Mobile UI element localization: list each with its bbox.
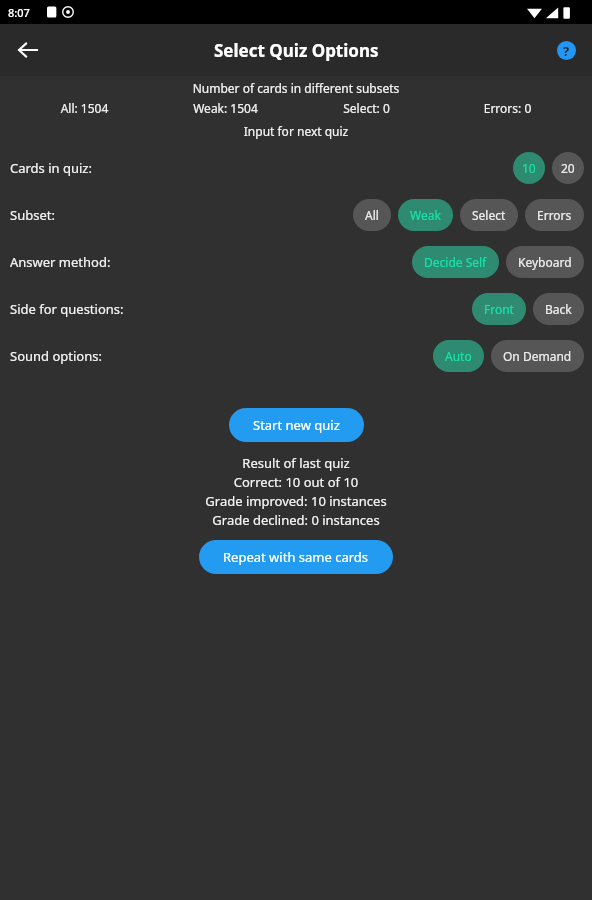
button[interactable]: Back <box>8 30 48 70</box>
button[interactable]: Select <box>460 199 518 231</box>
button[interactable]: 20 <box>552 152 584 184</box>
button[interactable]: 10 <box>513 152 545 184</box>
staticText: Weak <box>410 207 441 223</box>
staticText: Cards in quiz: <box>10 159 92 177</box>
staticText: Input for next quiz <box>0 123 592 139</box>
button[interactable]: Errors <box>525 199 584 231</box>
staticText: Answer method: <box>10 253 111 271</box>
staticText: Front <box>484 301 514 317</box>
staticText: All <box>365 207 379 223</box>
staticText: Errors <box>537 207 572 223</box>
staticText: Select: 0 <box>296 100 437 116</box>
staticText: On Demand <box>503 348 572 364</box>
staticText: Result of last quiz <box>0 454 592 472</box>
button[interactable]: Keyboard <box>506 246 584 278</box>
staticText: All: 1504 <box>14 100 155 116</box>
button[interactable]: Front <box>472 293 526 325</box>
staticText: ? <box>563 42 570 60</box>
button[interactable]: All <box>353 199 391 231</box>
staticText: Keyboard <box>518 254 572 270</box>
staticText: Select <box>472 207 506 223</box>
button[interactable]: On Demand <box>491 340 584 372</box>
staticText: Auto <box>445 348 472 364</box>
staticText: Select Quiz Options <box>214 39 379 62</box>
staticText: Grade declined: 0 instances <box>0 511 592 529</box>
staticText: Repeat with same cards <box>223 548 369 566</box>
staticText: Number of cards in different subsets <box>0 80 592 96</box>
button[interactable]: Help <box>546 30 586 70</box>
staticText: 10 <box>522 160 536 176</box>
staticText: Back <box>545 301 572 317</box>
button[interactable]: Start new quiz <box>229 408 364 442</box>
button[interactable]: Back <box>533 293 584 325</box>
button[interactable]: Weak <box>398 199 453 231</box>
staticText: Start new quiz <box>253 416 340 434</box>
staticText: Grade improved: 10 instances <box>0 492 592 510</box>
staticText: Correct: 10 out of 10 <box>0 473 592 491</box>
staticText: Decide Self <box>424 254 487 270</box>
button[interactable]: Repeat with same cards <box>199 540 393 574</box>
staticText: 8:07 <box>8 5 30 20</box>
button[interactable]: Auto <box>433 340 484 372</box>
button[interactable]: Decide Self <box>412 246 499 278</box>
staticText: Errors: 0 <box>437 100 578 116</box>
staticText: Side for questions: <box>10 300 124 318</box>
staticText: Subset: <box>10 206 55 224</box>
staticText: 20 <box>561 160 575 176</box>
staticText: Sound options: <box>10 347 102 365</box>
staticText: Weak: 1504 <box>155 100 296 116</box>
